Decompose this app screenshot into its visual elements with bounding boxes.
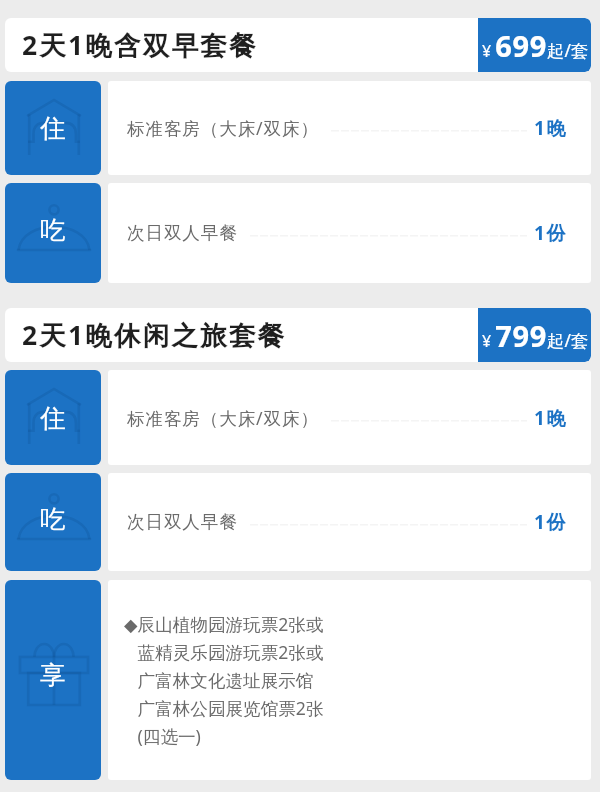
button[interactable]: 标准客房（大床/双床） bbox=[108, 81, 591, 175]
staticText: 吃 bbox=[40, 503, 66, 535]
staticText: 2天1晚休闲之旅套餐 bbox=[22, 317, 287, 353]
staticText: 次日双人早餐 bbox=[127, 222, 238, 244]
button[interactable]: 吃 bbox=[5, 473, 101, 571]
staticText: ¥799起/套 bbox=[482, 316, 589, 355]
button[interactable]: 住 bbox=[5, 370, 101, 465]
button[interactable]: 2天1晚休闲之旅套餐 bbox=[5, 308, 591, 362]
button[interactable]: 2天1晚含双早套餐 bbox=[5, 18, 591, 72]
staticText: 1晚 bbox=[534, 115, 568, 141]
button[interactable]: ◆辰山植物园游玩票2张或 ◆蓝精灵乐园游玩票2张或 ◆广富林文化遗址展示馆 ◆广… bbox=[108, 580, 591, 780]
staticText: 标准客房（大床/双床） bbox=[127, 406, 319, 430]
staticText: ◆辰山植物园游玩票2张或 ◆蓝精灵乐园游玩票2张或 ◆广富林文化遗址展示馆 ◆广… bbox=[124, 612, 324, 749]
staticText: ¥699起/套 bbox=[482, 26, 589, 65]
staticText: 2天1晚含双早套餐 bbox=[22, 27, 258, 63]
staticText: 1份 bbox=[534, 220, 568, 246]
staticText: 1份 bbox=[534, 509, 568, 535]
staticText: 标准客房（大床/双床） bbox=[127, 116, 319, 140]
button[interactable]: 享 bbox=[5, 580, 101, 780]
staticText: 住 bbox=[40, 402, 66, 434]
button[interactable]: 标准客房（大床/双床） bbox=[108, 370, 591, 465]
button[interactable]: 次日双人早餐 bbox=[108, 183, 591, 283]
staticText: 享 bbox=[40, 659, 66, 691]
button[interactable]: 次日双人早餐 bbox=[108, 473, 591, 571]
staticText: 住 bbox=[40, 112, 66, 144]
staticText: 吃 bbox=[40, 214, 66, 246]
staticText: 1晚 bbox=[534, 405, 568, 431]
button[interactable]: 住 bbox=[5, 81, 101, 175]
button[interactable]: 吃 bbox=[5, 183, 101, 283]
staticText: 次日双人早餐 bbox=[127, 511, 238, 533]
